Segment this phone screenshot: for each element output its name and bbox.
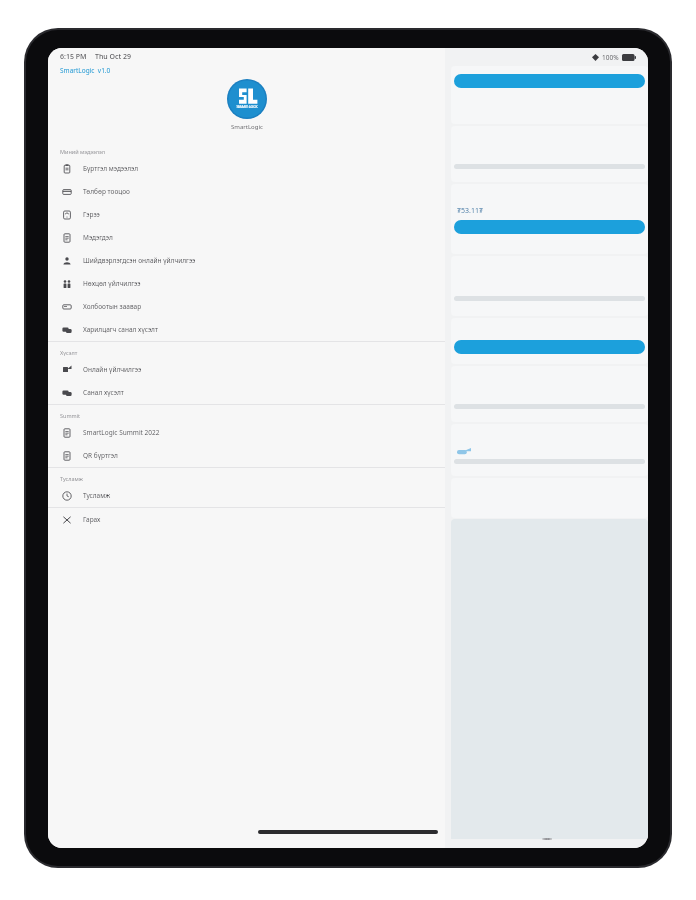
staticText: SMART LOCK (236, 104, 258, 109)
staticText: SmartLogic Summit 2022 (83, 428, 160, 437)
button[interactable]: Гарах (48, 508, 445, 531)
button[interactable]: Харилцагч санал хүсэлт (48, 318, 445, 341)
staticText: Thu Oct 29 (95, 52, 131, 62)
staticText: Бүртгэл мэдээлэл (83, 164, 139, 173)
button[interactable] (451, 66, 648, 124)
button[interactable]: Шийдвэрлэгдсэн онлайн үйлчилгээ (48, 249, 445, 272)
staticText: SmartLogic (231, 123, 263, 131)
button[interactable]: Бүртгэл мэдээлэл (48, 157, 445, 180)
button[interactable]: Нөхцөл үйлчилгээ (48, 272, 445, 295)
staticText: SmartLogic v1.0 (60, 66, 111, 75)
button[interactable]: Гэрээ (48, 203, 445, 226)
staticText: 6:15 PM (60, 52, 87, 62)
staticText: Нөхцөл үйлчилгээ (83, 279, 141, 288)
staticText: Холбоотын заавар (83, 302, 142, 311)
staticText: QR бүртгэл (83, 451, 118, 460)
staticText: Харилцагч санал хүсэлт (83, 325, 158, 334)
staticText: Summit (60, 412, 81, 419)
button[interactable]: ₮53.11₮ (451, 184, 648, 254)
button[interactable] (451, 256, 648, 316)
button[interactable]: SmartLogic Summit 2022 (48, 421, 445, 444)
button[interactable]: Төлбөр тооцоо (48, 180, 445, 203)
staticText: Тусламж (60, 475, 83, 482)
staticText: Миний мэдээлэл (60, 148, 105, 155)
button[interactable] (451, 318, 648, 364)
button[interactable]: Санал хүсэлт (48, 381, 445, 404)
staticText: Шийдвэрлэгдсэн онлайн үйлчилгээ (83, 256, 196, 265)
staticText: Тусламж (83, 491, 111, 500)
staticText: Төлбөр тооцоо (83, 187, 130, 196)
staticText: Мэдэгдэл (83, 233, 113, 242)
staticText: ₮53.11₮ (457, 206, 483, 216)
button[interactable] (451, 126, 648, 182)
button[interactable] (451, 366, 648, 422)
button[interactable]: QR бүртгэл (48, 444, 445, 467)
button[interactable]: SmartLogic logo (227, 79, 267, 119)
staticText: Санал хүсэлт (83, 388, 124, 397)
button[interactable] (451, 424, 648, 476)
button[interactable]: Холбоотын заавар (48, 295, 445, 318)
staticText: 100% (602, 53, 619, 62)
staticText: Хүсэлт (60, 349, 78, 356)
staticText: Гарах (83, 515, 101, 524)
button[interactable]: Онлайн үйлчилгээ (48, 358, 445, 381)
staticText: Гэрээ (83, 210, 100, 219)
button[interactable]: Тусламж (48, 484, 445, 507)
button[interactable]: Мэдэгдэл (48, 226, 445, 249)
staticText: Онлайн үйлчилгээ (83, 365, 142, 374)
